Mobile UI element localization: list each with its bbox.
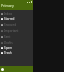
button[interactable]: Inbox (0, 11, 33, 16)
other: Menu (1, 68, 4, 71)
staticText: Snoozed (4, 23, 17, 27)
staticText: Spam (4, 46, 12, 50)
button[interactable]: Menu (0, 66, 33, 72)
staticText: Primary (1, 3, 14, 8)
staticText: Important (4, 29, 19, 33)
button[interactable]: Sent (0, 34, 33, 39)
staticText: Sent (4, 35, 11, 39)
button[interactable]: Snoozed (0, 22, 33, 27)
button[interactable]: Trash (0, 50, 33, 55)
staticText: Inbox (4, 12, 13, 16)
button[interactable]: Drafts (0, 40, 33, 45)
staticText: Drafts (4, 41, 13, 45)
button[interactable]: Spam (0, 45, 33, 50)
button[interactable]: Starred (0, 16, 33, 21)
button[interactable]: Important (0, 28, 33, 33)
staticText: Trash (4, 51, 12, 55)
staticText: Starred (4, 17, 15, 21)
